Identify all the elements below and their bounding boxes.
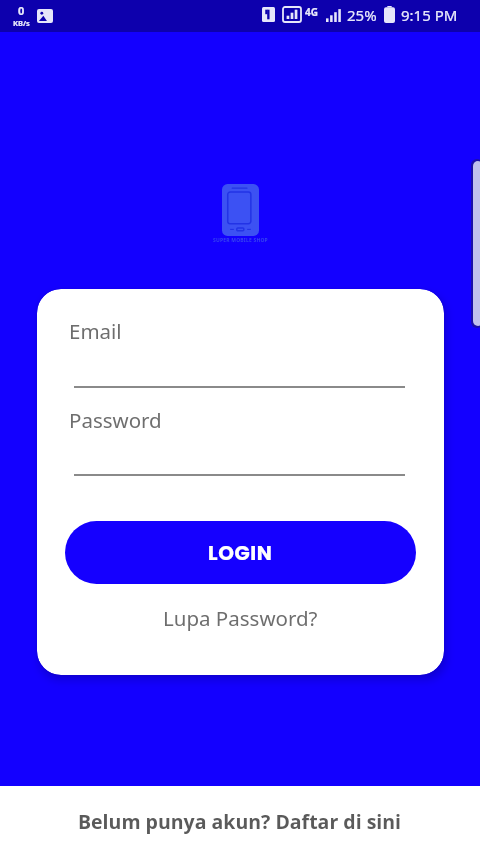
staticText: LOGIN [208,539,273,567]
other: Mobile data [283,7,301,22]
staticText: Email [69,317,122,345]
button[interactable]: Email [65,309,416,388]
staticText: 9:15 PM [401,5,458,25]
button[interactable]: LOGIN [65,521,416,584]
button[interactable]: Password [65,398,416,476]
other: Gallery [37,9,53,23]
button[interactable]: Lupa Password? [159,600,322,636]
other: SIM 1 [262,7,275,22]
other: Super Mobile Shop logo [222,184,259,236]
staticText: 0 [18,3,25,18]
staticText: KB/s [13,18,30,28]
staticText: Password [69,406,162,434]
button[interactable]: Belum punya akun? Daftar di sini [70,800,410,843]
staticText: 25% [347,5,377,25]
staticText: SUPER MOBILE SHOP [213,237,268,244]
staticText: 4G [305,5,318,19]
other: Battery 25 percent [384,6,395,23]
other: Signal strength [326,8,342,22]
